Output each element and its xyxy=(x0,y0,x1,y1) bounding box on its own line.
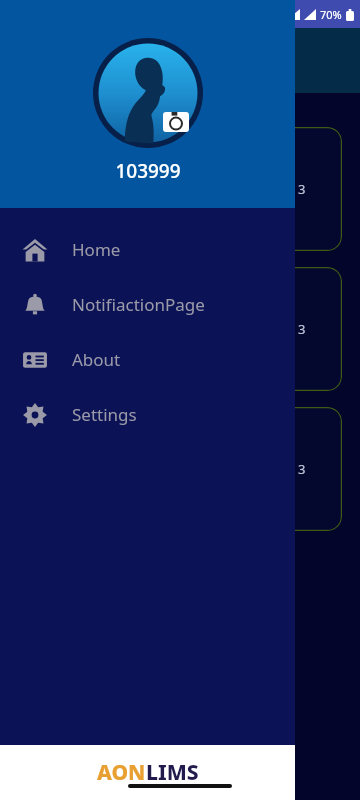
staticText: About xyxy=(72,348,121,371)
button[interactable]: Settings xyxy=(0,387,295,442)
staticText: 3 xyxy=(298,180,306,198)
staticText: 3 xyxy=(298,460,306,478)
staticText: LIMS xyxy=(146,758,199,787)
button[interactable]: 3 xyxy=(18,127,342,251)
button[interactable]: Change photo xyxy=(163,112,189,132)
staticText: Settings xyxy=(72,403,137,426)
staticText: 70% xyxy=(320,7,342,22)
button[interactable]: About xyxy=(0,332,295,387)
staticText: AON xyxy=(97,758,146,787)
button[interactable]: 3 xyxy=(18,267,342,391)
staticText: 103999 xyxy=(115,158,181,184)
staticText: Home xyxy=(72,238,121,261)
staticText: 3 xyxy=(298,320,306,338)
button[interactable]: NotifiactionPage xyxy=(0,277,295,332)
staticText: NotifiactionPage xyxy=(72,293,205,316)
button[interactable]: 3 xyxy=(18,407,342,531)
button[interactable]: Home xyxy=(0,222,295,277)
